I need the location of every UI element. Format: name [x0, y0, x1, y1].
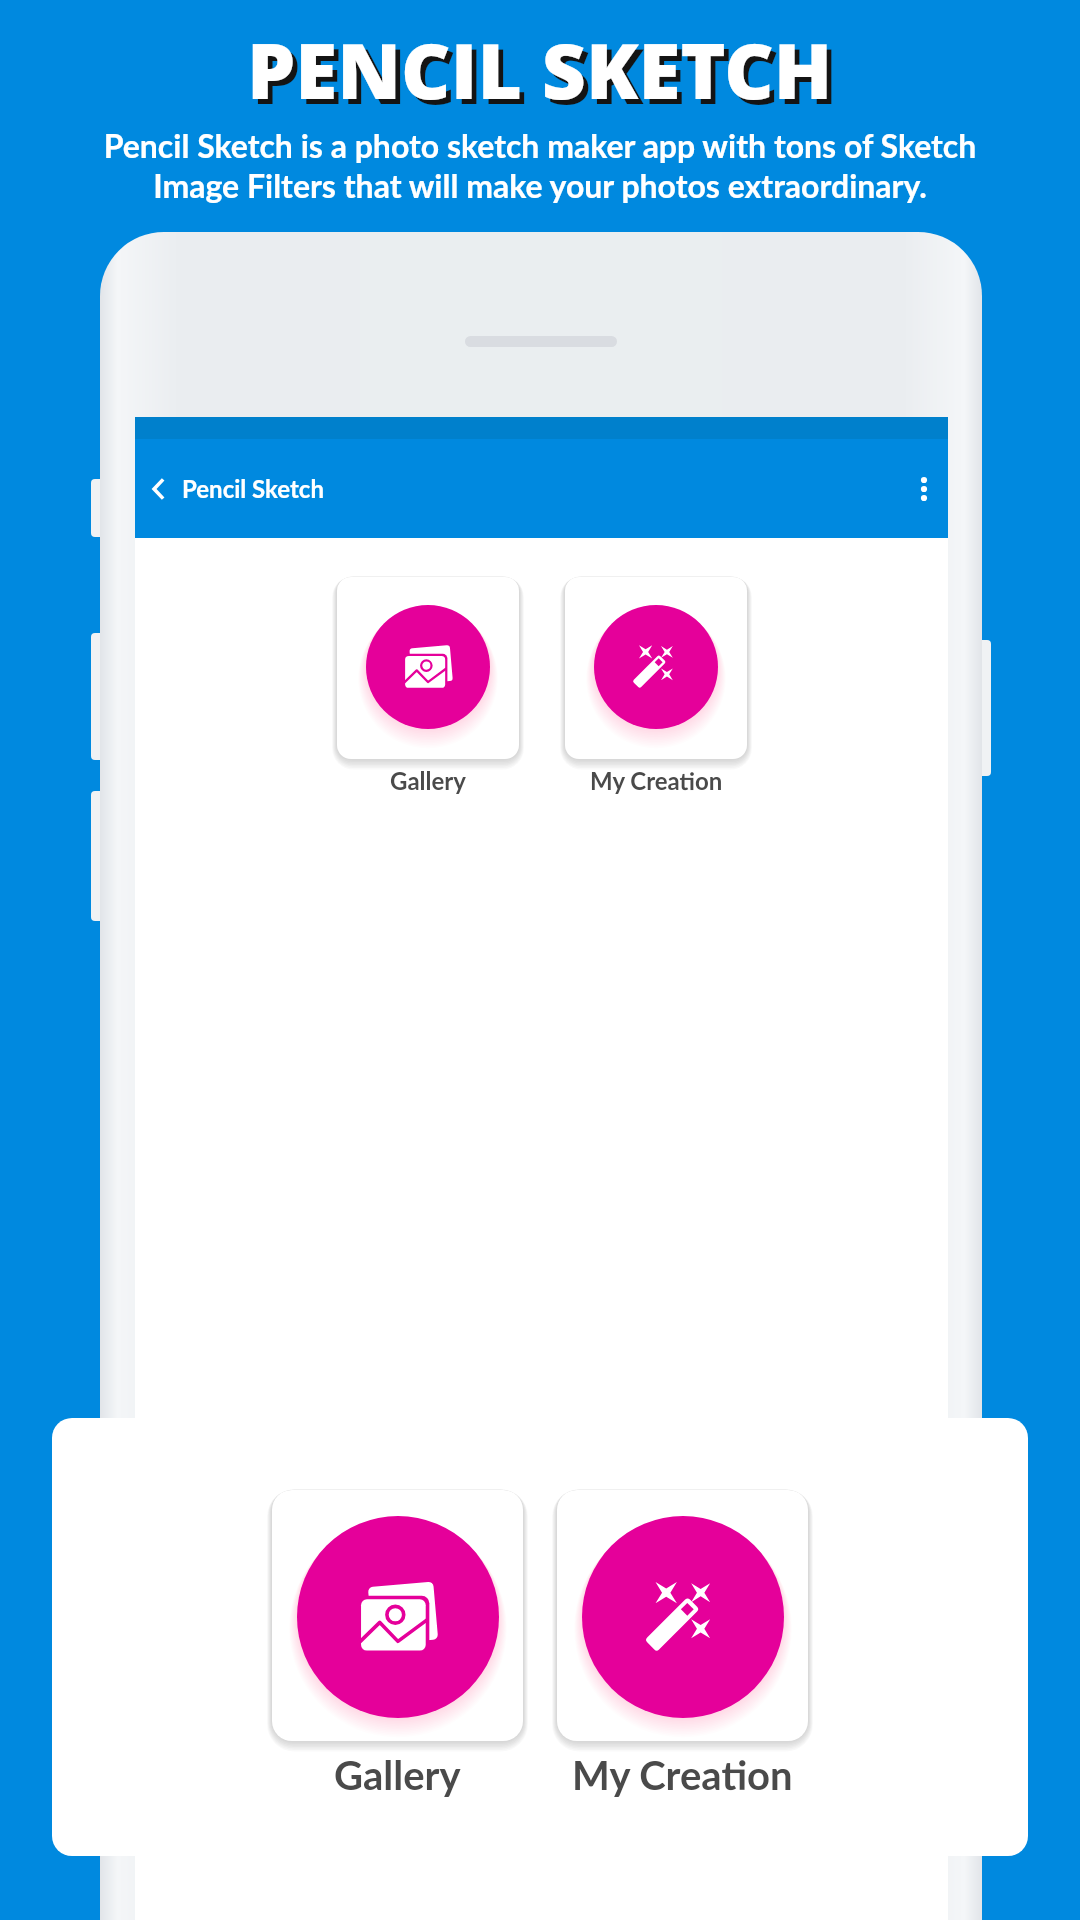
staticText: Gallery — [334, 1751, 461, 1799]
button[interactable]: My Creation — [557, 1490, 808, 1799]
staticText: Gallery — [390, 766, 466, 795]
staticText: My Creation — [572, 1751, 793, 1799]
button[interactable]: My Creation — [565, 577, 747, 795]
staticText: PENCIL SKETCH — [252, 22, 838, 126]
staticText: Pencil Sketch is a photo sketch maker ap… — [0, 126, 1080, 205]
button[interactable]: Gallery — [337, 577, 519, 795]
button[interactable]: More options — [896, 461, 952, 517]
staticText: Pencil Sketch — [182, 474, 324, 503]
staticText: My Creation — [590, 766, 723, 795]
staticText: PENCIL SKETCH — [247, 17, 833, 121]
button[interactable]: Gallery — [272, 1490, 523, 1799]
button[interactable]: Back — [131, 461, 187, 517]
